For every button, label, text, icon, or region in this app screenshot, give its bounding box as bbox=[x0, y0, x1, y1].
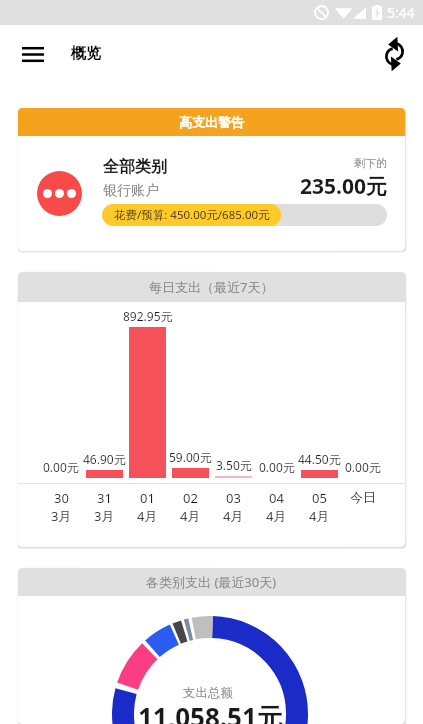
staticText: 支出总额 bbox=[183, 685, 233, 701]
staticText: 04 bbox=[269, 489, 284, 507]
staticText: 05 bbox=[312, 489, 327, 507]
button[interactable]: 各类别支出 (最近30天) bbox=[18, 568, 405, 724]
staticText: 每日支出（最近7天） bbox=[149, 278, 274, 296]
staticText: 59.00元 bbox=[169, 449, 212, 465]
button[interactable]: Refresh bbox=[372, 32, 416, 76]
staticText: 4月 bbox=[137, 507, 158, 525]
staticText: 892.95元 bbox=[123, 308, 173, 324]
staticText: 4月 bbox=[180, 507, 201, 525]
staticText: 3月 bbox=[51, 507, 72, 525]
staticText: 235.00元 bbox=[300, 172, 387, 201]
staticText: 01 bbox=[140, 489, 155, 507]
staticText: 3.50元 bbox=[216, 457, 252, 473]
staticText: 0.00元 bbox=[43, 459, 79, 475]
staticText: 今日 bbox=[350, 489, 376, 505]
staticText: 0.00元 bbox=[345, 459, 381, 475]
staticText: 4月 bbox=[266, 507, 287, 525]
staticText: 31 bbox=[97, 489, 112, 507]
staticText: 46.90元 bbox=[83, 451, 126, 467]
staticText: 全部类别 bbox=[103, 157, 167, 177]
staticText: 4月 bbox=[309, 507, 330, 525]
staticText: 4月 bbox=[223, 507, 244, 525]
staticText: 44.50元 bbox=[298, 451, 341, 467]
staticText: 5:44 bbox=[387, 3, 415, 22]
staticText: 花费/预算: 450.00元/685.00元 bbox=[114, 207, 270, 223]
staticText: 30 bbox=[54, 489, 69, 507]
staticText: 11,058.51元 bbox=[138, 699, 283, 724]
staticText: 0.00元 bbox=[259, 459, 295, 475]
staticText: 概览 bbox=[71, 44, 101, 63]
staticText: 3月 bbox=[94, 507, 115, 525]
staticText: 02 bbox=[183, 489, 198, 507]
button[interactable]: 每日支出（最近7天） bbox=[18, 272, 405, 547]
button[interactable]: 高支出警告 bbox=[18, 108, 405, 251]
staticText: 03 bbox=[226, 489, 241, 507]
button[interactable]: Menu bbox=[11, 32, 55, 76]
staticText: 各类别支出 (最近30天) bbox=[146, 573, 277, 591]
staticText: 银行账户 bbox=[103, 182, 159, 200]
staticText: 高支出警告 bbox=[179, 114, 244, 130]
staticText: 剩下的 bbox=[354, 156, 387, 170]
